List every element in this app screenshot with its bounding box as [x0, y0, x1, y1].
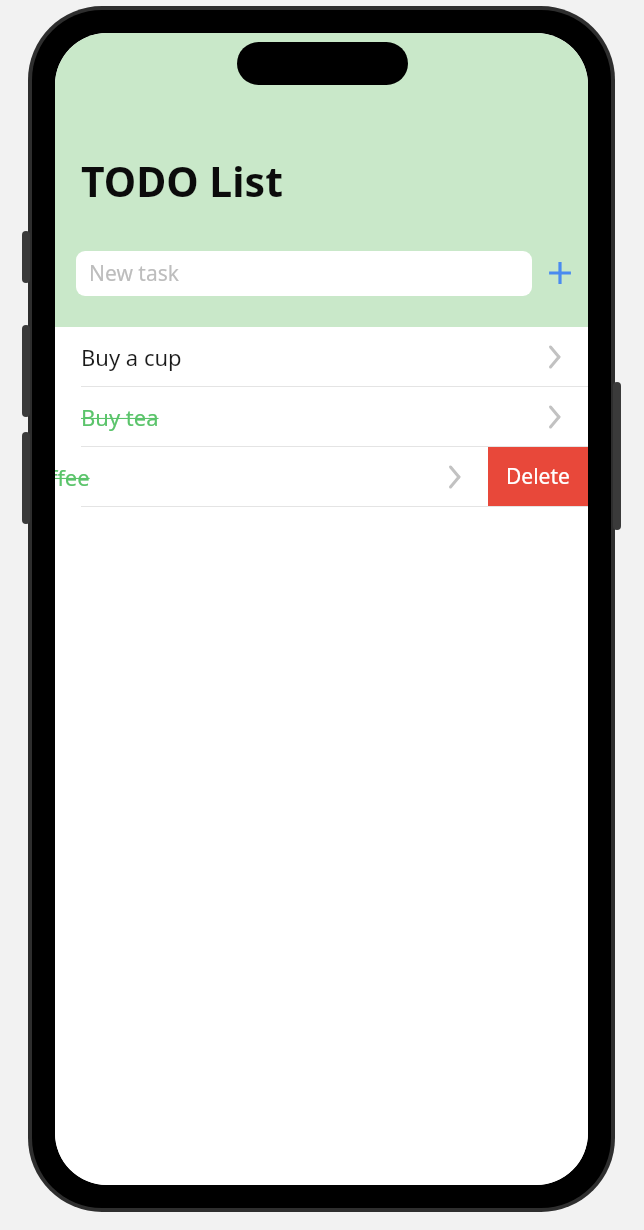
button[interactable]: New task — [76, 251, 532, 296]
staticText: Buy coffee — [55, 462, 90, 492]
button[interactable]: Buy tea — [55, 387, 588, 446]
staticText: Buy tea — [81, 402, 159, 432]
button[interactable]: Buy a cup — [55, 327, 588, 386]
button[interactable]: Delete — [488, 447, 588, 506]
button[interactable]: Buy coffee — [55, 447, 488, 506]
staticText: TODO List — [81, 153, 283, 209]
staticText: Delete — [506, 462, 570, 491]
staticText: Buy a cup — [81, 342, 182, 372]
button[interactable]: Add task — [532, 250, 588, 296]
staticText: New task — [89, 259, 179, 288]
